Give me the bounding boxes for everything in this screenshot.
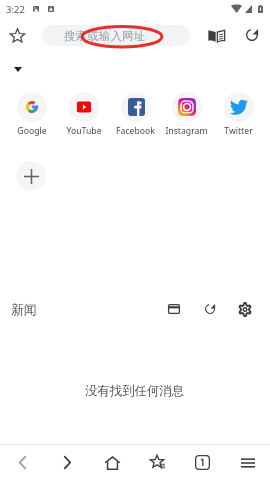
staticText: Instagram [165, 125, 208, 137]
button[interactable]: 搜索或输入网址 [42, 25, 190, 46]
button[interactable]: Menu [225, 445, 270, 480]
staticText: Facebook [116, 125, 155, 137]
staticText: 没有找到任何消息 [85, 383, 185, 399]
staticText: 搜索或输入网址 [64, 29, 146, 44]
button[interactable]: Reload page [238, 21, 266, 49]
staticText: 新闻 [11, 302, 37, 318]
button[interactable]: Collapse shortcuts [7, 59, 28, 80]
button[interactable]: Bookmark page [3, 21, 32, 50]
button[interactable]: Reading list [202, 21, 230, 49]
staticText: Google [17, 125, 47, 137]
button[interactable]: YouTube [58, 92, 109, 137]
button[interactable]: Home [90, 445, 135, 480]
button[interactable]: Bookmarks [135, 445, 180, 480]
staticText: YouTube [66, 125, 102, 137]
button[interactable]: Instagram [161, 92, 212, 137]
button[interactable]: Facebook [110, 92, 161, 137]
staticText: Twitter [224, 125, 253, 137]
button[interactable]: Feed settings [234, 298, 256, 320]
button[interactable]: Tabs [180, 445, 225, 480]
button[interactable]: Back [0, 445, 45, 480]
button[interactable]: Twitter [213, 92, 264, 137]
staticText: 3:22 [6, 3, 25, 16]
button[interactable]: Feed layout [163, 298, 185, 320]
button[interactable]: Add shortcut [16, 161, 46, 191]
button[interactable]: Refresh feed [199, 298, 221, 320]
button[interactable]: Forward [45, 445, 90, 480]
button[interactable]: Google [6, 92, 57, 137]
